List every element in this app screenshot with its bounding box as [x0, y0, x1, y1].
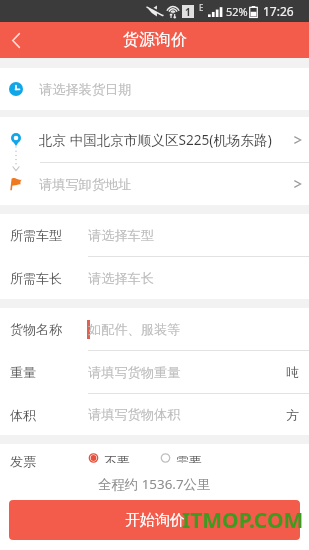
staticText: 请选择车型: [88, 227, 154, 244]
staticText: 货源询价: [123, 30, 187, 50]
button[interactable]: 不要: [83, 448, 136, 468]
button[interactable]: 北京 中国北京市顺义区S225(机场东路): [0, 117, 309, 162]
staticText: 全程约 1536.7公里: [98, 475, 211, 493]
button[interactable]: 请选择装货日期: [0, 68, 309, 110]
button[interactable]: 请填写卸货地址: [0, 163, 309, 205]
button[interactable]: 开始询价: [9, 500, 300, 540]
staticText: 请填写货物重量: [88, 364, 181, 381]
staticText: 请填写卸货地址: [39, 176, 132, 193]
staticText: 体积: [10, 407, 36, 423]
button[interactable]: Back: [0, 22, 32, 58]
staticText: 重量: [10, 364, 36, 380]
staticText: 如配件、服装等: [88, 321, 181, 338]
staticText: 开始询价: [125, 511, 185, 530]
staticText: 52%: [226, 4, 248, 19]
staticText: 发票: [10, 453, 36, 468]
staticText: 请选择车长: [88, 270, 154, 287]
button[interactable]: 所需车长: [0, 257, 309, 299]
staticText: 所需车长: [10, 270, 62, 286]
staticText: 所需车型: [10, 227, 62, 243]
staticText: ITMOP.COM: [182, 506, 304, 535]
staticText: 吨: [286, 364, 299, 380]
staticText: 货物名称: [10, 321, 62, 337]
staticText: 17:26: [263, 3, 294, 19]
button[interactable]: 体积: [0, 394, 309, 435]
staticText: 方: [286, 407, 299, 423]
staticText: E: [199, 2, 204, 13]
staticText: 1: [185, 5, 191, 18]
staticText: 不要: [104, 453, 130, 463]
button[interactable]: 需要: [155, 448, 208, 468]
staticText: 北京 中国北京市顺义区S225(机场东路): [39, 130, 272, 149]
button[interactable]: 重量: [0, 351, 309, 393]
button[interactable]: 所需车型: [0, 214, 309, 256]
staticText: 需要: [176, 453, 202, 463]
staticText: 请填写货物体积: [88, 406, 181, 423]
button[interactable]: 货物名称: [0, 308, 309, 350]
staticText: 请选择装货日期: [39, 81, 132, 98]
